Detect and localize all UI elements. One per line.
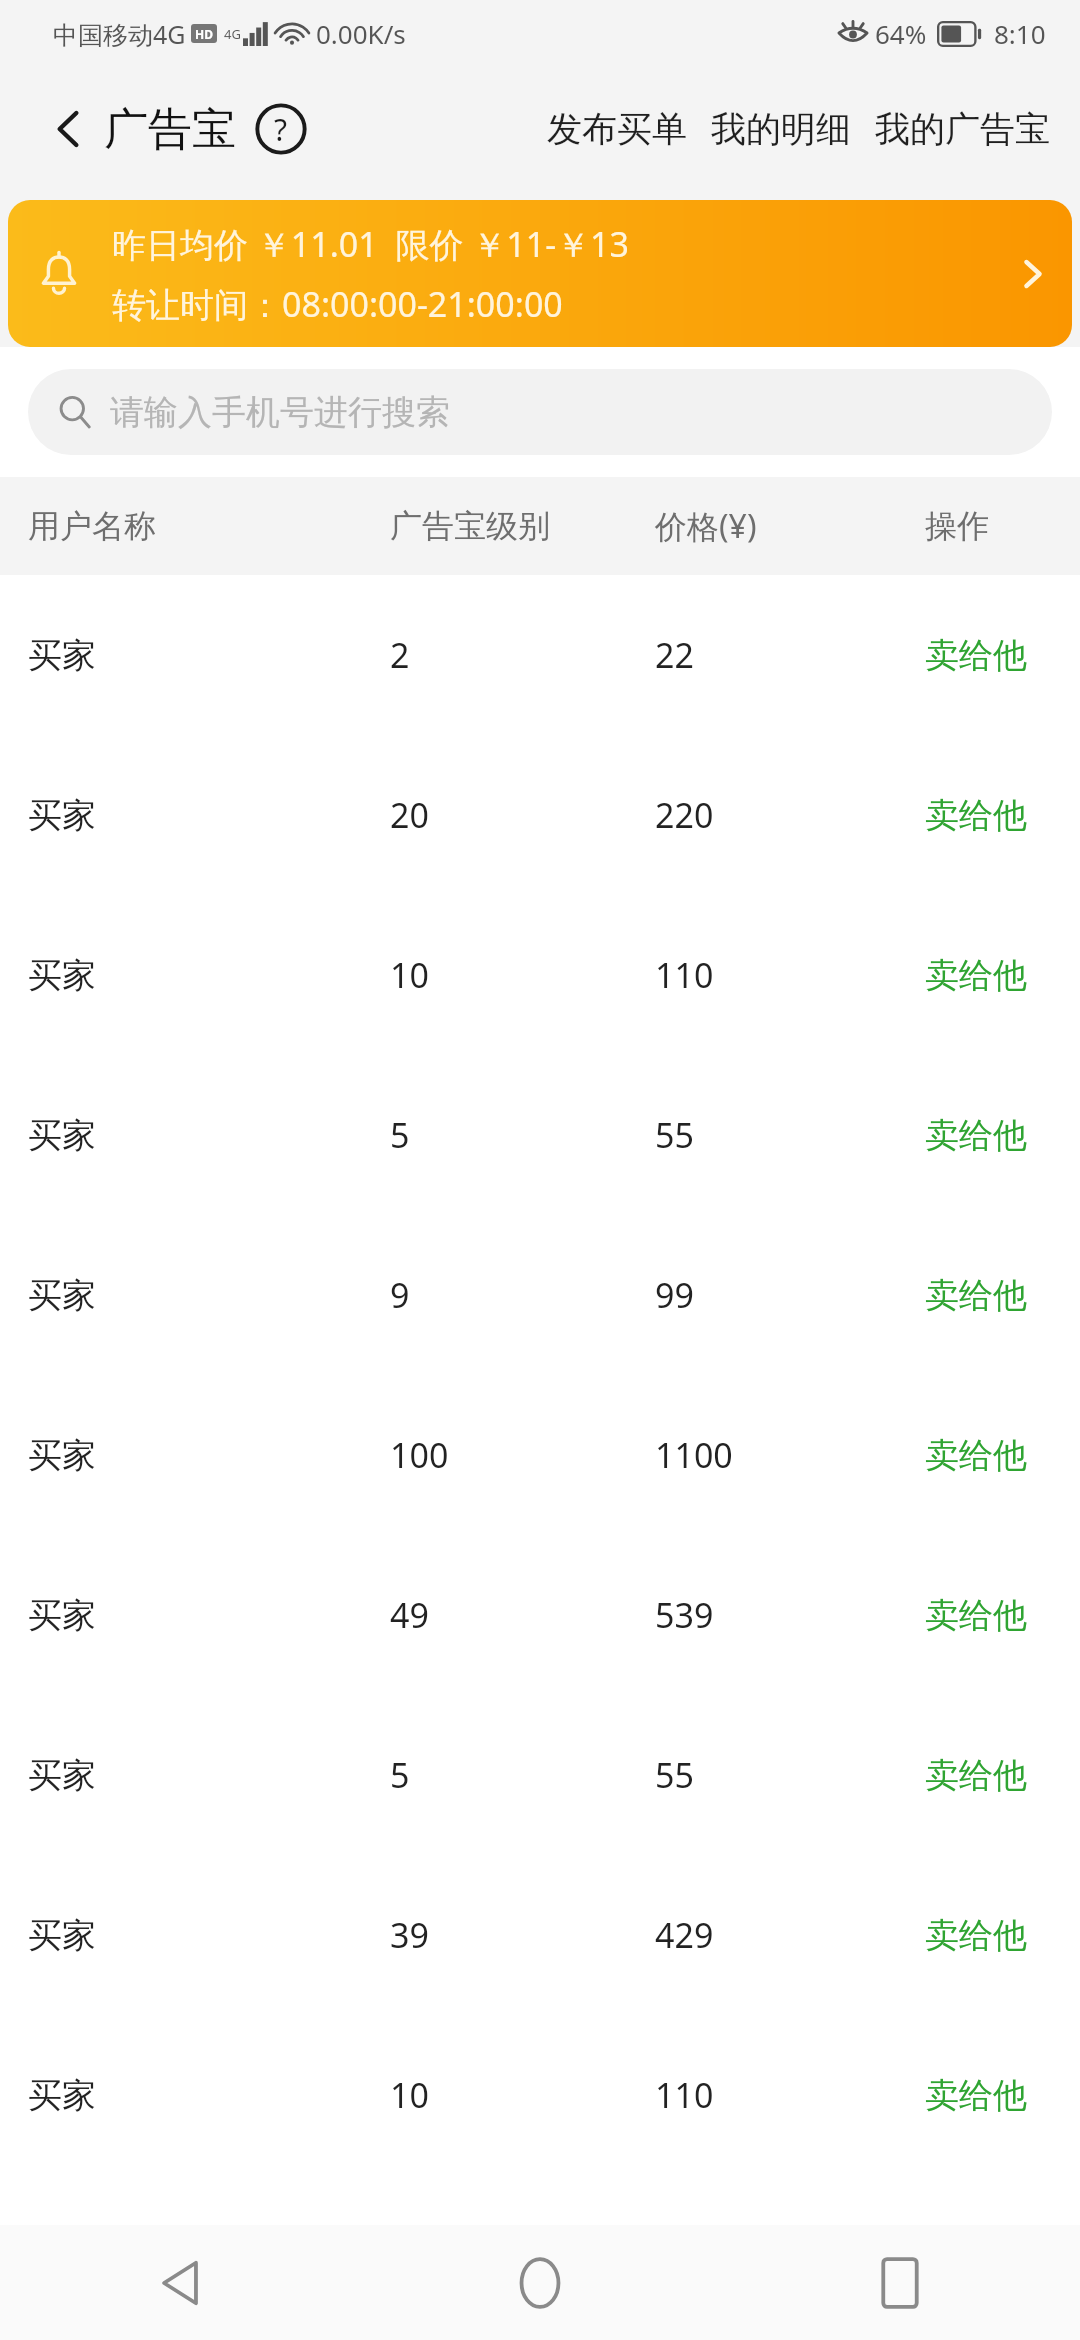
staticText: 卖给他	[925, 2074, 1027, 2117]
staticText: 5	[390, 1112, 410, 1158]
staticText: 99	[655, 1272, 694, 1318]
button[interactable]: 发布买单	[535, 93, 699, 165]
button[interactable]: 卖给他	[925, 1754, 1027, 1797]
staticText: 卖给他	[925, 1274, 1027, 1317]
staticText: 买家	[28, 954, 96, 997]
staticText: 64%	[875, 16, 927, 51]
staticText: 429	[655, 1912, 714, 1958]
button[interactable]: 卖给他	[925, 1434, 1027, 1477]
staticText: 4G	[224, 25, 241, 43]
button[interactable]: Recent apps	[720, 2225, 1080, 2340]
staticText: 昨日均价 ￥11.01 限价 ￥11-￥13	[112, 221, 630, 267]
button[interactable]: 买家	[0, 575, 1080, 735]
button[interactable]: 买家	[0, 895, 1080, 1055]
button[interactable]: 买家	[0, 1695, 1080, 1855]
button[interactable]: 卖给他	[925, 2074, 1027, 2117]
staticText: 10	[390, 952, 429, 998]
staticText: 卖给他	[925, 1754, 1027, 1797]
staticText: 0.00K/s	[316, 16, 406, 51]
staticText: 中国移动4G	[53, 17, 186, 51]
button[interactable]: 卖给他	[925, 1114, 1027, 1157]
staticText: 用户名称	[28, 506, 156, 546]
button[interactable]: 卖给他	[925, 794, 1027, 837]
button[interactable]: 卖给他	[925, 1594, 1027, 1637]
staticText: 买家	[28, 1754, 96, 1797]
button[interactable]: 买家	[0, 2015, 1080, 2175]
staticText: 买家	[28, 794, 96, 837]
button[interactable]: 买家	[0, 1375, 1080, 1535]
button[interactable]: Back	[44, 105, 92, 153]
staticText: 我的明细	[711, 107, 851, 151]
button[interactable]: 买家	[0, 1535, 1080, 1695]
staticText: 转让时间：08:00:00-21:00:00	[112, 281, 563, 327]
staticText: 22	[655, 632, 694, 678]
staticText: 请输入手机号进行搜索	[110, 391, 450, 434]
staticText: 8:10	[994, 16, 1046, 51]
staticText: 卖给他	[925, 1914, 1027, 1957]
button[interactable]: 卖给他	[925, 1274, 1027, 1317]
staticText: 买家	[28, 1274, 96, 1317]
button[interactable]: 卖给他	[925, 1914, 1027, 1957]
button[interactable]: 卖给他	[925, 954, 1027, 997]
staticText: 39	[390, 1912, 429, 1958]
button[interactable]: 我的明细	[699, 93, 863, 165]
staticText: 卖给他	[925, 1114, 1027, 1157]
staticText: 买家	[28, 634, 96, 677]
staticText: 2	[390, 632, 410, 678]
staticText: 广告宝	[104, 102, 236, 157]
staticText: 买家	[28, 2074, 96, 2117]
staticText: 110	[655, 2072, 714, 2118]
staticText: 110	[655, 952, 714, 998]
button[interactable]: 卖给他	[925, 634, 1027, 677]
button[interactable]: 买家	[0, 1055, 1080, 1215]
staticText: 10	[390, 2072, 429, 2118]
staticText: 广告宝级别	[390, 506, 550, 546]
button[interactable]: Help	[252, 100, 310, 158]
staticText: 55	[655, 1752, 694, 1798]
staticText: 55	[655, 1112, 694, 1158]
staticText: 卖给他	[925, 1434, 1027, 1477]
staticText: 5	[390, 1752, 410, 1798]
staticText: 买家	[28, 1914, 96, 1957]
staticText: 卖给他	[925, 1594, 1027, 1637]
staticText: 卖给他	[925, 634, 1027, 677]
staticText: 1100	[655, 1432, 733, 1478]
staticText: 9	[390, 1272, 410, 1318]
button[interactable]: 我的广告宝	[863, 93, 1062, 165]
button[interactable]: Back	[0, 2225, 360, 2340]
staticText: 卖给他	[925, 954, 1027, 997]
staticText: 220	[655, 792, 714, 838]
staticText: 发布买单	[547, 107, 687, 151]
staticText: 价格(¥)	[655, 504, 757, 548]
staticText: 买家	[28, 1114, 96, 1157]
staticText: 49	[390, 1592, 429, 1638]
staticText: 操作	[925, 506, 989, 546]
staticText: ?	[274, 109, 288, 150]
staticText: 买家	[28, 1594, 96, 1637]
staticText: 我的广告宝	[875, 107, 1050, 151]
staticText: 卖给他	[925, 794, 1027, 837]
button[interactable]: 买家	[0, 1855, 1080, 2015]
button[interactable]: 买家	[0, 735, 1080, 895]
button[interactable]: 买家	[0, 1215, 1080, 1375]
button[interactable]: Home	[360, 2225, 720, 2340]
staticText: 买家	[28, 1434, 96, 1477]
staticText: 100	[390, 1432, 449, 1478]
button[interactable]: 昨日均价 ￥11.01 限价 ￥11-￥13	[8, 200, 1072, 347]
staticText: 20	[390, 792, 429, 838]
staticText: HD	[195, 26, 213, 42]
staticText: 539	[655, 1592, 714, 1638]
button[interactable]: 请输入手机号进行搜索	[28, 369, 1052, 455]
